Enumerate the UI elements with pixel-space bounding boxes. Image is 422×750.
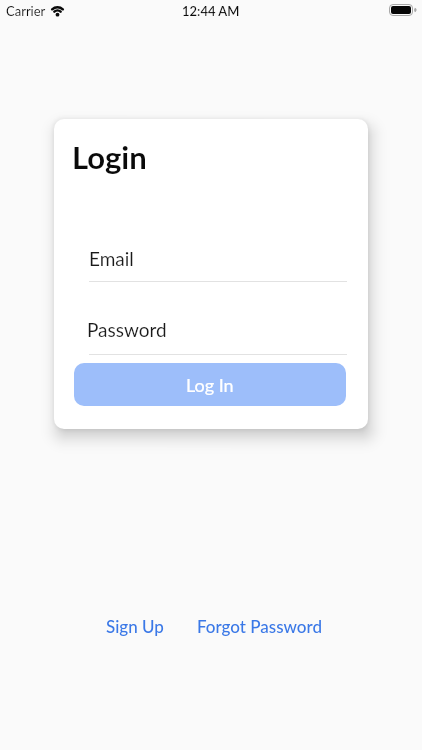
staticText: Log In [186,374,234,396]
staticText: Forgot Password [197,616,323,636]
staticText: Carrier [6,3,46,19]
staticText: Sign Up [106,616,164,636]
button[interactable]: Password [89,309,347,355]
button[interactable]: Log In [74,363,346,406]
button[interactable]: Sign Up [106,616,164,636]
staticText: Password [87,318,167,341]
staticText: Email [89,247,134,270]
staticText: 12:44 AM [182,3,240,19]
button[interactable]: Forgot Password [197,616,323,636]
staticText: Login [72,138,147,175]
button[interactable]: Email [89,237,347,282]
